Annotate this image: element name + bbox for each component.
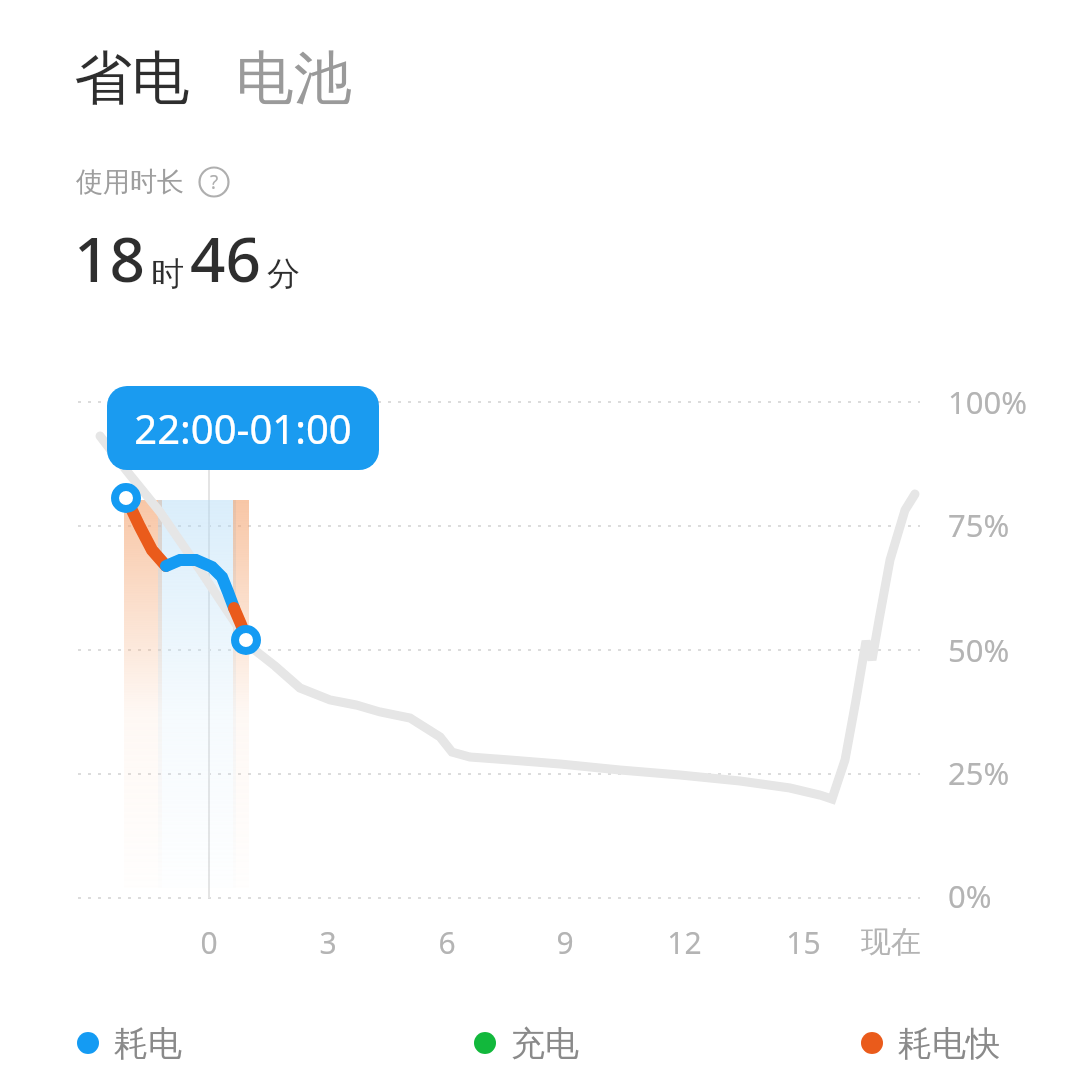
staticText: 9 xyxy=(556,922,574,963)
staticText: 46 xyxy=(190,216,261,300)
staticText: ? xyxy=(210,169,219,195)
staticText: 耗电 xyxy=(114,1022,182,1065)
staticText: 100% xyxy=(948,381,1027,423)
staticText: 现在 xyxy=(861,923,921,961)
button[interactable]: 电池 xyxy=(236,42,352,115)
staticText: 22:00-01:00 xyxy=(134,401,352,455)
button[interactable]: 充电 xyxy=(471,1018,579,1068)
staticText: 18 xyxy=(74,216,145,300)
staticText: 耗电快 xyxy=(898,1022,1000,1065)
staticText: 电池 xyxy=(236,42,352,115)
staticText: 使用时长 xyxy=(76,165,184,199)
button[interactable]: 耗电 xyxy=(74,1018,182,1068)
staticText: 50% xyxy=(948,629,1010,671)
staticText: 25% xyxy=(948,752,1010,794)
staticText: 6 xyxy=(438,922,456,963)
button[interactable]: 22:00-01:00 xyxy=(107,386,379,470)
button[interactable]: 省电 xyxy=(74,42,190,115)
staticText: 0 xyxy=(200,922,218,963)
staticText: 时 xyxy=(151,253,184,295)
button[interactable]: 帮助 xyxy=(198,166,230,198)
staticText: 3 xyxy=(319,922,337,963)
staticText: 12 xyxy=(667,922,702,963)
staticText: 75% xyxy=(948,504,1010,546)
staticText: 省电 xyxy=(74,42,190,115)
button[interactable]: 耗电快 xyxy=(858,1018,1000,1068)
staticText: 0% xyxy=(948,875,992,917)
staticText: 15 xyxy=(786,922,821,963)
staticText: 充电 xyxy=(511,1022,579,1065)
staticText: 分 xyxy=(267,253,300,295)
